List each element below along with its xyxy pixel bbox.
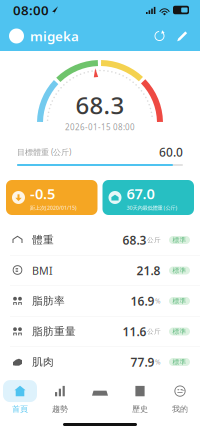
button[interactable]: 體重	[0, 225, 200, 255]
staticText: 脂肪重量	[32, 325, 76, 338]
staticText: 30天內最低體重 (公斤)	[126, 204, 177, 211]
button[interactable]: BMI	[0, 255, 200, 286]
staticText: 11.6	[122, 323, 146, 339]
button[interactable]: 脂肪重量	[0, 316, 200, 347]
staticText: 68.3	[122, 232, 146, 248]
button[interactable]: 首頁	[0, 377, 40, 417]
button[interactable]: -0.5	[6, 180, 97, 215]
staticText: 公斤	[147, 327, 161, 336]
button[interactable]: 肌肉	[0, 347, 200, 377]
staticText: 我的	[172, 404, 188, 414]
button[interactable]: Refresh	[149, 23, 170, 48]
staticText: 體重	[32, 233, 54, 246]
button[interactable]	[80, 377, 120, 417]
staticText: 60.0	[159, 144, 183, 160]
staticText: -0.5	[30, 184, 55, 203]
button[interactable]: 67.0	[102, 180, 194, 215]
staticText: 歷史	[132, 404, 148, 414]
staticText: %	[155, 297, 161, 305]
staticText: 標準	[172, 327, 186, 336]
staticText: 標準	[172, 358, 186, 366]
staticText: migeka	[30, 27, 79, 45]
staticText: 21.8	[136, 262, 160, 278]
staticText: 標準	[172, 297, 186, 305]
staticText: 67.0	[126, 184, 154, 203]
staticText: 公斤	[147, 236, 161, 244]
staticText: 目標體重 (公斤)	[17, 147, 71, 157]
button[interactable]: Edit	[170, 23, 191, 48]
staticText: 距上次(2020/01/15)	[30, 204, 77, 211]
staticText: 77.9	[130, 354, 154, 370]
staticText: 趨勢	[52, 404, 68, 414]
staticText: 標準	[172, 236, 186, 244]
staticText: %	[155, 358, 161, 366]
staticText: 首頁	[12, 404, 28, 414]
staticText: 2026-01-15 08:00	[65, 122, 135, 132]
staticText: 08:00	[13, 1, 49, 19]
button[interactable]: 脂肪率	[0, 286, 200, 316]
staticText: 脂肪率	[32, 294, 65, 307]
staticText: 肌肉	[32, 355, 54, 368]
staticText: 68.3	[75, 89, 124, 121]
button[interactable]: 我的	[160, 377, 200, 417]
staticText: 標準	[172, 266, 186, 275]
staticText: BMI	[32, 263, 53, 278]
staticText: 16.9	[130, 293, 154, 309]
button[interactable]: 趨勢	[40, 377, 80, 417]
button[interactable]: 歷史	[120, 377, 160, 417]
